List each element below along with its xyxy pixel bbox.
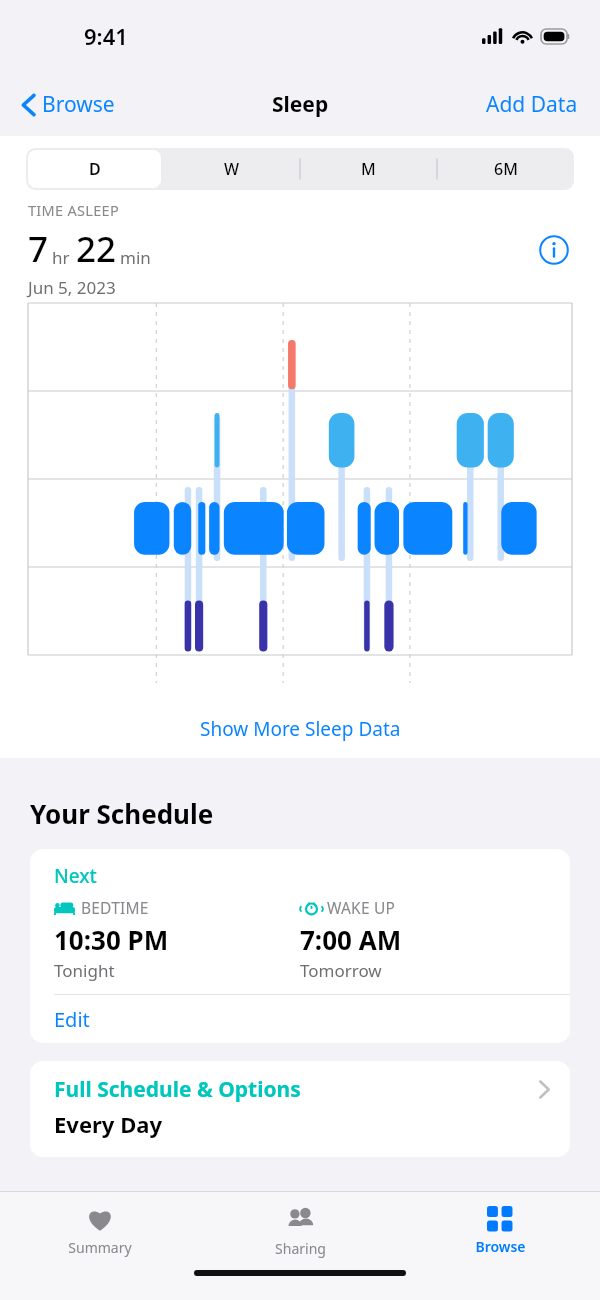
staticText: Sleep <box>272 90 329 119</box>
button[interactable]: Browse <box>400 1192 600 1270</box>
staticText: min <box>120 246 151 269</box>
staticText: Tomorrow <box>300 959 382 982</box>
button[interactable]: Edit <box>30 995 570 1043</box>
staticText: BEDTIME <box>81 897 149 918</box>
staticText: Tonight <box>54 959 115 982</box>
staticText: Browse <box>42 90 115 119</box>
button[interactable]: W <box>165 150 298 188</box>
staticText: D <box>89 158 101 180</box>
staticText: 7 <box>28 225 49 273</box>
button[interactable]: 6M <box>439 150 572 188</box>
staticText: Sharing <box>275 1239 326 1258</box>
staticText: 6M <box>494 158 518 180</box>
staticText: 7:00 AM <box>300 922 402 957</box>
staticText: 10:30 PM <box>54 922 169 957</box>
button[interactable]: M <box>302 150 435 188</box>
staticText: hr <box>52 246 70 269</box>
staticText: 22 <box>76 225 117 273</box>
button[interactable]: Show More Sleep Data <box>0 706 600 752</box>
button[interactable]: Add Data <box>486 84 600 125</box>
staticText: Jun 5, 2023 <box>28 276 116 299</box>
staticText: Full Schedule & Options <box>54 1075 539 1104</box>
button[interactable]: Full Schedule & Options <box>30 1061 570 1157</box>
staticText: Show More Sleep Data <box>200 716 401 742</box>
staticText: Summary <box>68 1238 132 1257</box>
button[interactable]: Sharing <box>200 1192 400 1270</box>
staticText: WAKE UP <box>327 897 396 918</box>
button[interactable]: D <box>28 150 161 188</box>
button[interactable]: About sleep data <box>536 232 572 268</box>
staticText: W <box>224 158 240 180</box>
staticText: Every Day <box>54 1109 162 1139</box>
staticText: 9:41 <box>84 21 128 51</box>
staticText: Edit <box>54 1006 90 1033</box>
staticText: Next <box>54 863 97 889</box>
staticText: M <box>361 158 376 180</box>
staticText: Your Schedule <box>30 796 214 831</box>
button[interactable]: Browse <box>16 86 121 123</box>
staticText: TIME ASLEEP <box>28 200 119 220</box>
button[interactable]: Summary <box>0 1192 200 1270</box>
staticText: Browse <box>475 1237 526 1256</box>
